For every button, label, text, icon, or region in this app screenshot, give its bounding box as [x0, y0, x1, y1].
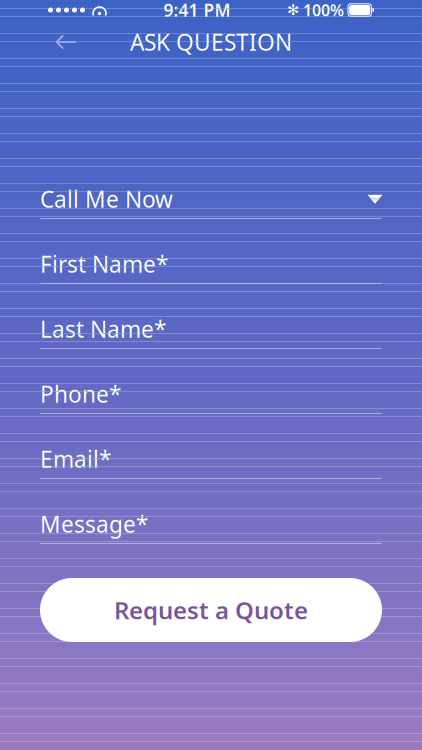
staticText: Email*: [40, 444, 111, 474]
staticText: Call Me Now: [40, 184, 173, 214]
button[interactable]: First Name*: [40, 245, 382, 284]
staticText: 100%: [303, 0, 344, 21]
button[interactable]: Back: [40, 20, 92, 64]
button[interactable]: Phone*: [40, 375, 382, 414]
button[interactable]: Last Name*: [40, 310, 382, 349]
staticText: 9:41 PM: [163, 0, 230, 21]
staticText: ASK QUESTION: [130, 27, 292, 57]
button[interactable]: Request a Quote: [40, 578, 382, 642]
button[interactable]: Message*: [40, 505, 382, 544]
button[interactable]: Call Me Now: [40, 180, 382, 219]
staticText: ✻: [287, 2, 299, 18]
staticText: Phone*: [40, 379, 121, 409]
staticText: Request a Quote: [114, 594, 308, 626]
staticText: Message*: [40, 509, 148, 539]
button[interactable]: Email*: [40, 440, 382, 479]
staticText: First Name*: [40, 249, 168, 279]
staticText: Last Name*: [40, 314, 166, 344]
